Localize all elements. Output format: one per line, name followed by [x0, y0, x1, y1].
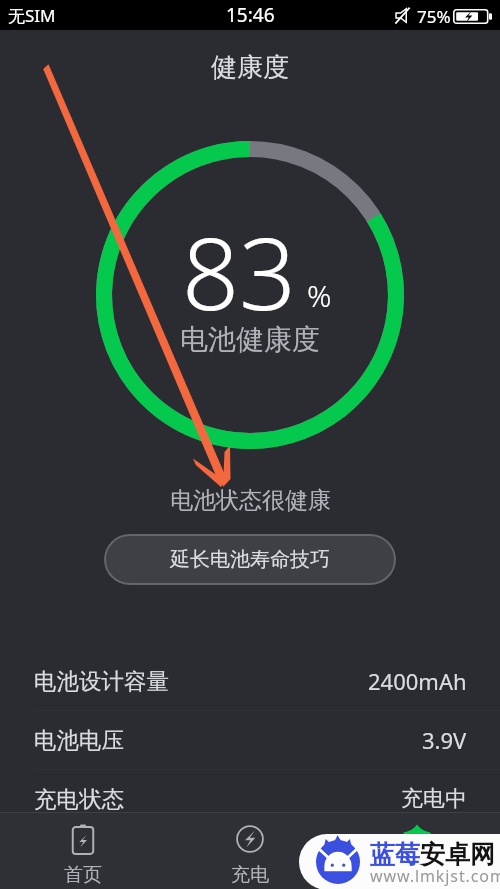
staticText: 电池电压	[34, 726, 124, 754]
button[interactable]: 省电	[333, 813, 500, 889]
other: 充电	[235, 824, 265, 854]
staticText: 电池健康度	[180, 322, 320, 357]
staticText: 充电中	[401, 785, 467, 813]
staticText: %	[307, 275, 332, 316]
button[interactable]: 充电	[166, 813, 333, 889]
staticText: 15:46	[226, 2, 275, 28]
staticText: 首页	[64, 863, 102, 887]
other: 首页	[68, 824, 98, 854]
button[interactable]: 延长电池寿命技巧	[104, 534, 396, 585]
staticText: www.lmkjst.com	[370, 865, 500, 887]
staticText: 充电状态	[34, 785, 124, 813]
staticText: 健康度	[211, 51, 289, 83]
staticText: 83	[182, 203, 297, 339]
staticText: 电池状态很健康	[170, 486, 331, 515]
staticText: 75%	[417, 5, 451, 28]
button[interactable]: 充电状态	[0, 770, 500, 828]
staticText: 充电	[231, 863, 269, 887]
staticText: 无SIM	[8, 4, 56, 27]
button[interactable]: 首页	[0, 813, 166, 889]
staticText: 安卓网	[420, 839, 495, 870]
staticText: 电池设计容量	[34, 667, 169, 695]
staticText: 蓝莓	[370, 839, 420, 870]
staticText: 省电	[398, 863, 436, 887]
staticText: 2400mAh	[368, 666, 467, 696]
other: 省电	[402, 824, 432, 854]
staticText: 延长电池寿命技巧	[170, 547, 330, 572]
staticText: 3.9V	[422, 725, 467, 755]
button[interactable]: 电池电压	[0, 711, 500, 769]
other: Silent mode	[395, 7, 412, 24]
button[interactable]: 电池设计容量	[0, 652, 500, 710]
